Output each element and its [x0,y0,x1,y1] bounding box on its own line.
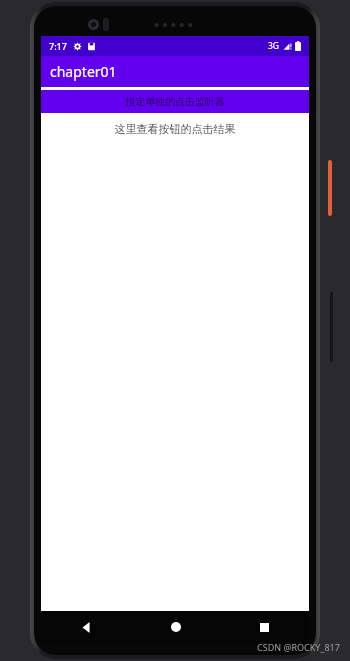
button[interactable]: Home [131,611,220,643]
staticText: 这里查看按钮的点击结果 [41,122,309,136]
button[interactable]: Recents [220,611,309,643]
staticText: chapter01 [50,62,117,81]
staticText: 3G [268,40,280,52]
staticText: 指定单独的点击监听器 [125,95,225,108]
staticText: CSDN @ROCKY_817 [257,641,340,653]
button[interactable]: Back [41,611,131,643]
staticText: 7:17 [49,40,67,52]
button[interactable]: 指定单独的点击监听器 [41,90,309,113]
